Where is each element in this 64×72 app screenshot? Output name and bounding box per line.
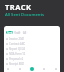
button[interactable]: Proposal v2 (4, 56, 60, 61)
button[interactable]: Receipt 8821 (4, 61, 60, 66)
button[interactable]: Home (6, 67, 10, 71)
button[interactable]: NDA Form 12 (4, 51, 60, 56)
staticText: NDA Form 12 (9, 52, 26, 56)
staticText: Report Q3 24 (9, 47, 26, 51)
staticText: Contract ABC (9, 42, 26, 46)
button[interactable]: Draft (14, 31, 21, 34)
staticText: All (23, 31, 27, 34)
staticText: TRACK (5, 2, 32, 12)
button[interactable]: Search (18, 67, 22, 71)
button[interactable]: Profile (54, 67, 58, 71)
button[interactable]: Invoice 2041 (4, 36, 60, 41)
button[interactable]: Notifications (42, 67, 46, 71)
button[interactable]: All (22, 31, 28, 34)
button[interactable]: Report Q3 24 (4, 46, 60, 51)
button[interactable]: Add (30, 67, 34, 71)
staticText: Invoice 2041 (9, 37, 25, 41)
staticText: Receipt 8821 (9, 62, 25, 66)
button[interactable]: Sent (6, 31, 13, 34)
staticText: Sent (7, 31, 13, 34)
staticText: All Sent Documents (5, 12, 45, 18)
button[interactable]: Contract ABC (4, 41, 60, 46)
staticText: Proposal v2 (9, 57, 24, 61)
staticText: Draft (14, 31, 21, 34)
